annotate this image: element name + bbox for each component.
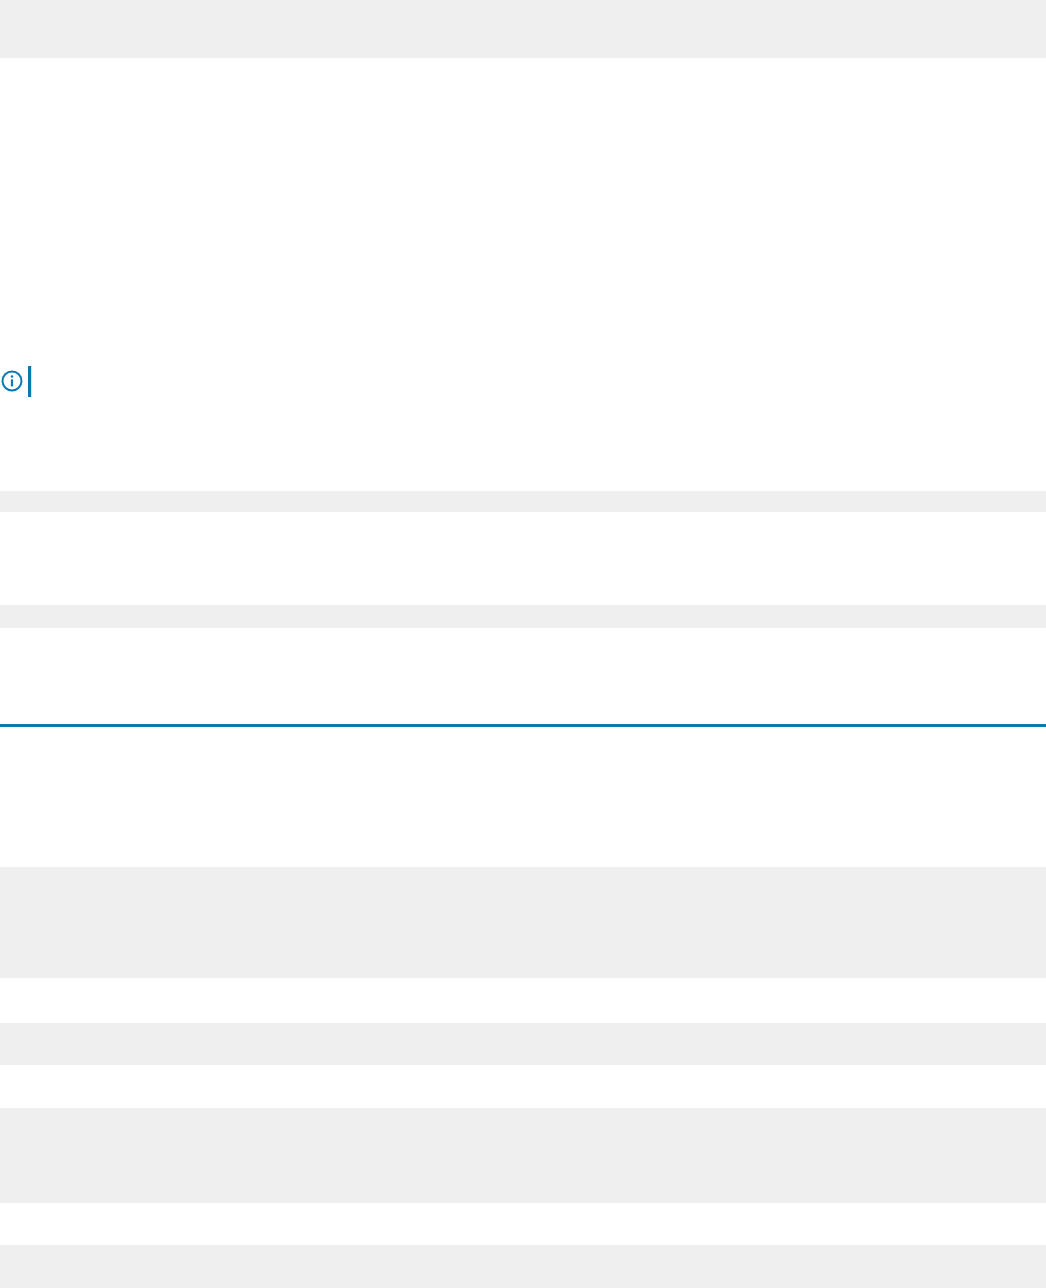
- button[interactable]: Information: [0, 362, 40, 402]
